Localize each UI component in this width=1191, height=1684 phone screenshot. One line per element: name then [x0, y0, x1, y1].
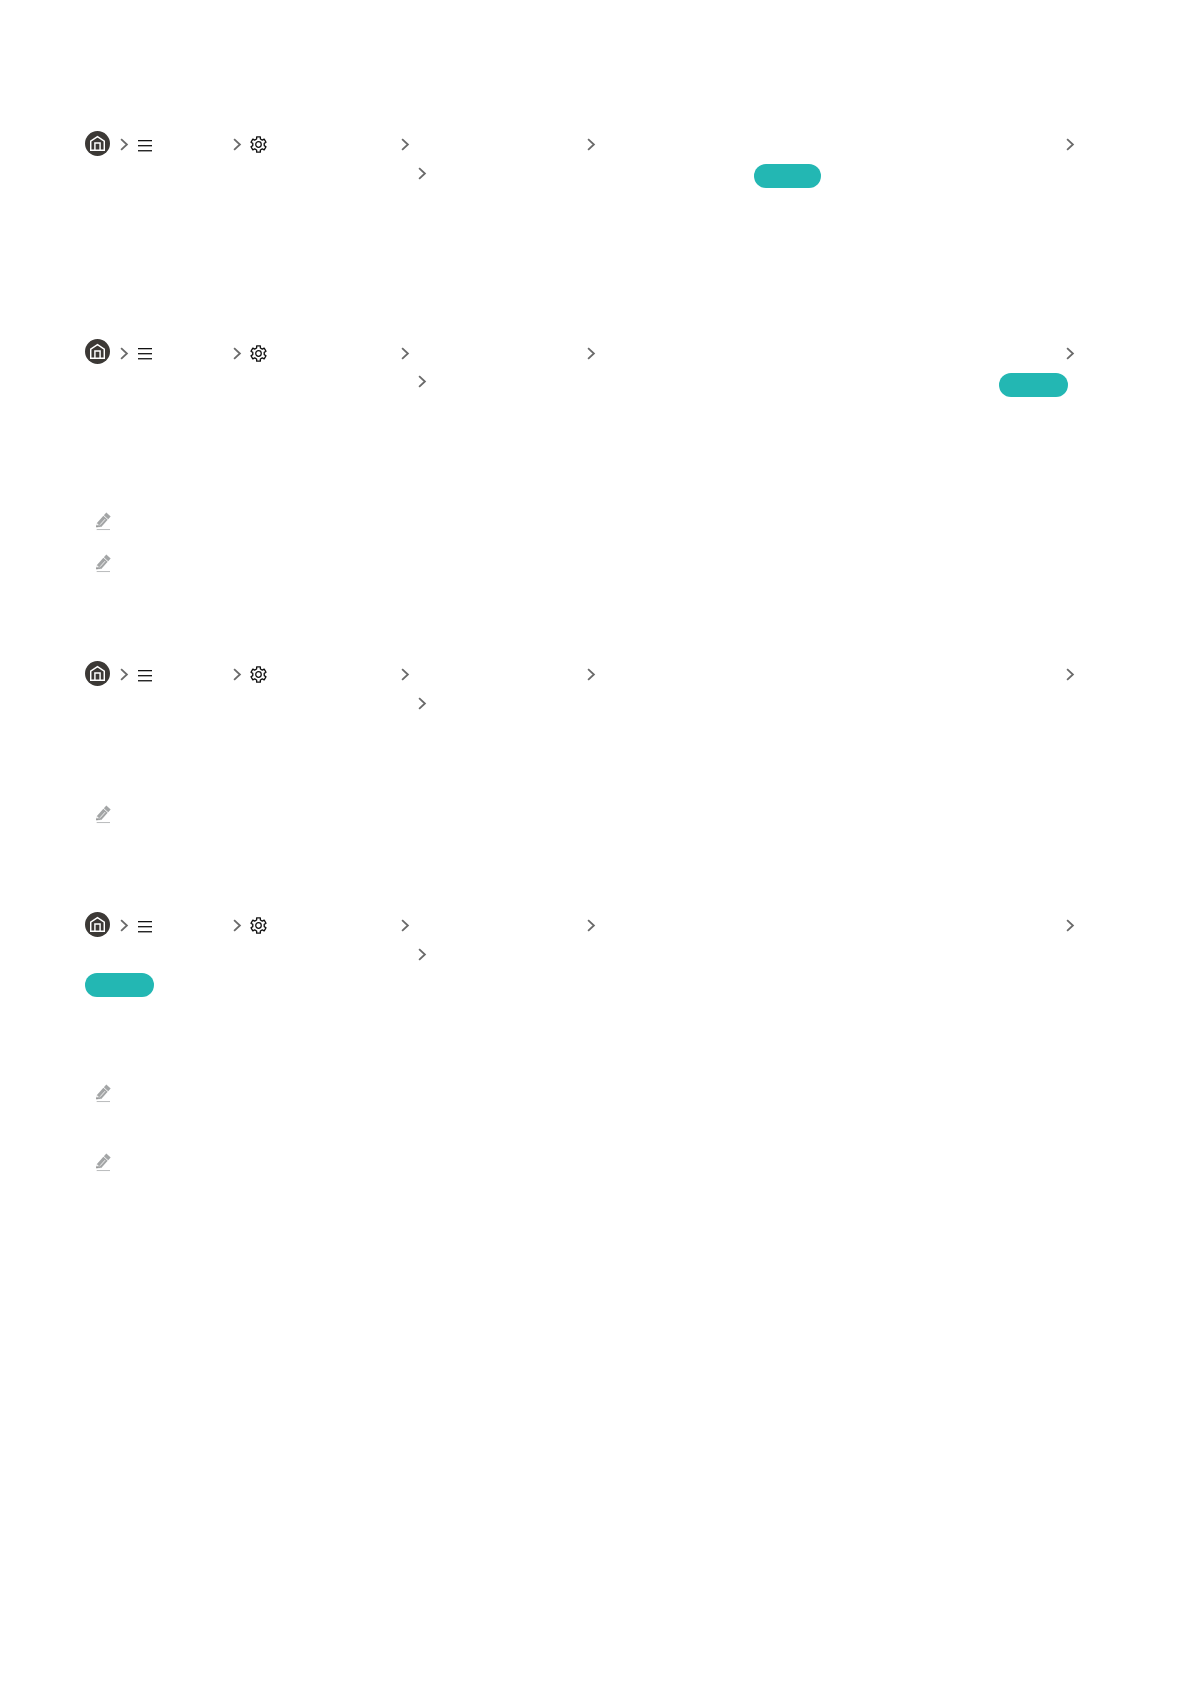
button[interactable]: Home [85, 661, 110, 686]
other: Note [96, 1084, 110, 1102]
other: Note [96, 1153, 110, 1171]
button[interactable]: Settings [250, 136, 267, 153]
button[interactable]: Menu [138, 348, 152, 359]
button[interactable]: Menu [138, 921, 152, 932]
button[interactable]: Action [999, 373, 1068, 397]
other: Note [96, 554, 110, 572]
button[interactable]: Menu [138, 670, 152, 681]
button[interactable]: Menu [138, 140, 152, 151]
button[interactable]: Settings [250, 345, 267, 362]
other: Note [96, 512, 110, 530]
button[interactable]: Settings [250, 917, 267, 934]
other: Note [96, 805, 110, 823]
button[interactable]: Action [85, 973, 154, 997]
button[interactable]: Action [754, 164, 821, 188]
button[interactable]: Home [85, 912, 110, 937]
button[interactable]: Home [85, 131, 110, 156]
button[interactable]: Settings [250, 666, 267, 683]
button[interactable]: Home [85, 339, 110, 364]
